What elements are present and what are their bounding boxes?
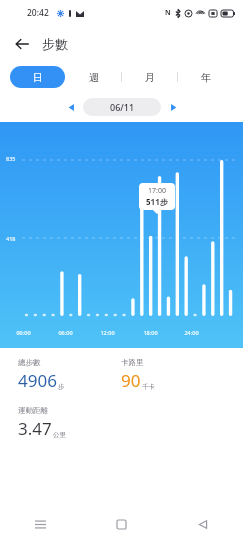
button[interactable]: Next day (165, 99, 181, 115)
button[interactable]: Home (81, 508, 162, 540)
button[interactable]: 日 (10, 66, 65, 88)
button[interactable]: 總步數 (18, 358, 121, 392)
staticText: 日 (33, 71, 43, 84)
staticText: 17:00 (148, 186, 166, 196)
staticText: 年 (201, 71, 211, 84)
button[interactable]: 月 (122, 66, 177, 88)
button[interactable]: 週 (66, 66, 121, 88)
button[interactable]: Previous day (63, 99, 79, 115)
button[interactable]: 運動距離 (18, 406, 121, 440)
staticText: 步數 (42, 36, 68, 52)
staticText: 4906 (18, 369, 57, 392)
staticText: N (165, 8, 171, 18)
staticText: 835 (6, 155, 16, 162)
staticText: 00:00 (16, 329, 31, 336)
staticText: 公里 (53, 431, 66, 439)
staticText: 3.47 (18, 417, 52, 440)
button[interactable]: Back (8, 30, 36, 58)
staticText: 24:00 (184, 329, 199, 336)
staticText: 運動距離 (18, 406, 48, 415)
staticText: 千卡 (142, 383, 155, 391)
button[interactable]: Recents (0, 508, 81, 540)
button[interactable]: 年 (178, 66, 233, 88)
staticText: 週 (89, 71, 99, 84)
staticText: 20:42 (27, 7, 49, 19)
staticText: 511步 (146, 196, 168, 207)
staticText: 90 (121, 369, 141, 392)
button[interactable]: 卡路里 (121, 358, 225, 392)
button[interactable]: 06/11 (83, 98, 161, 116)
staticText: 12:00 (100, 329, 115, 336)
staticText: 步 (58, 383, 65, 391)
staticText: 06/11 (110, 101, 135, 113)
staticText: 月 (145, 71, 155, 84)
staticText: 18:00 (143, 329, 158, 336)
staticText: 總步數 (18, 358, 41, 367)
button[interactable]: Back (162, 508, 243, 540)
staticText: 06:00 (58, 329, 73, 336)
staticText: 卡路里 (121, 358, 144, 367)
staticText: 418 (6, 235, 16, 242)
